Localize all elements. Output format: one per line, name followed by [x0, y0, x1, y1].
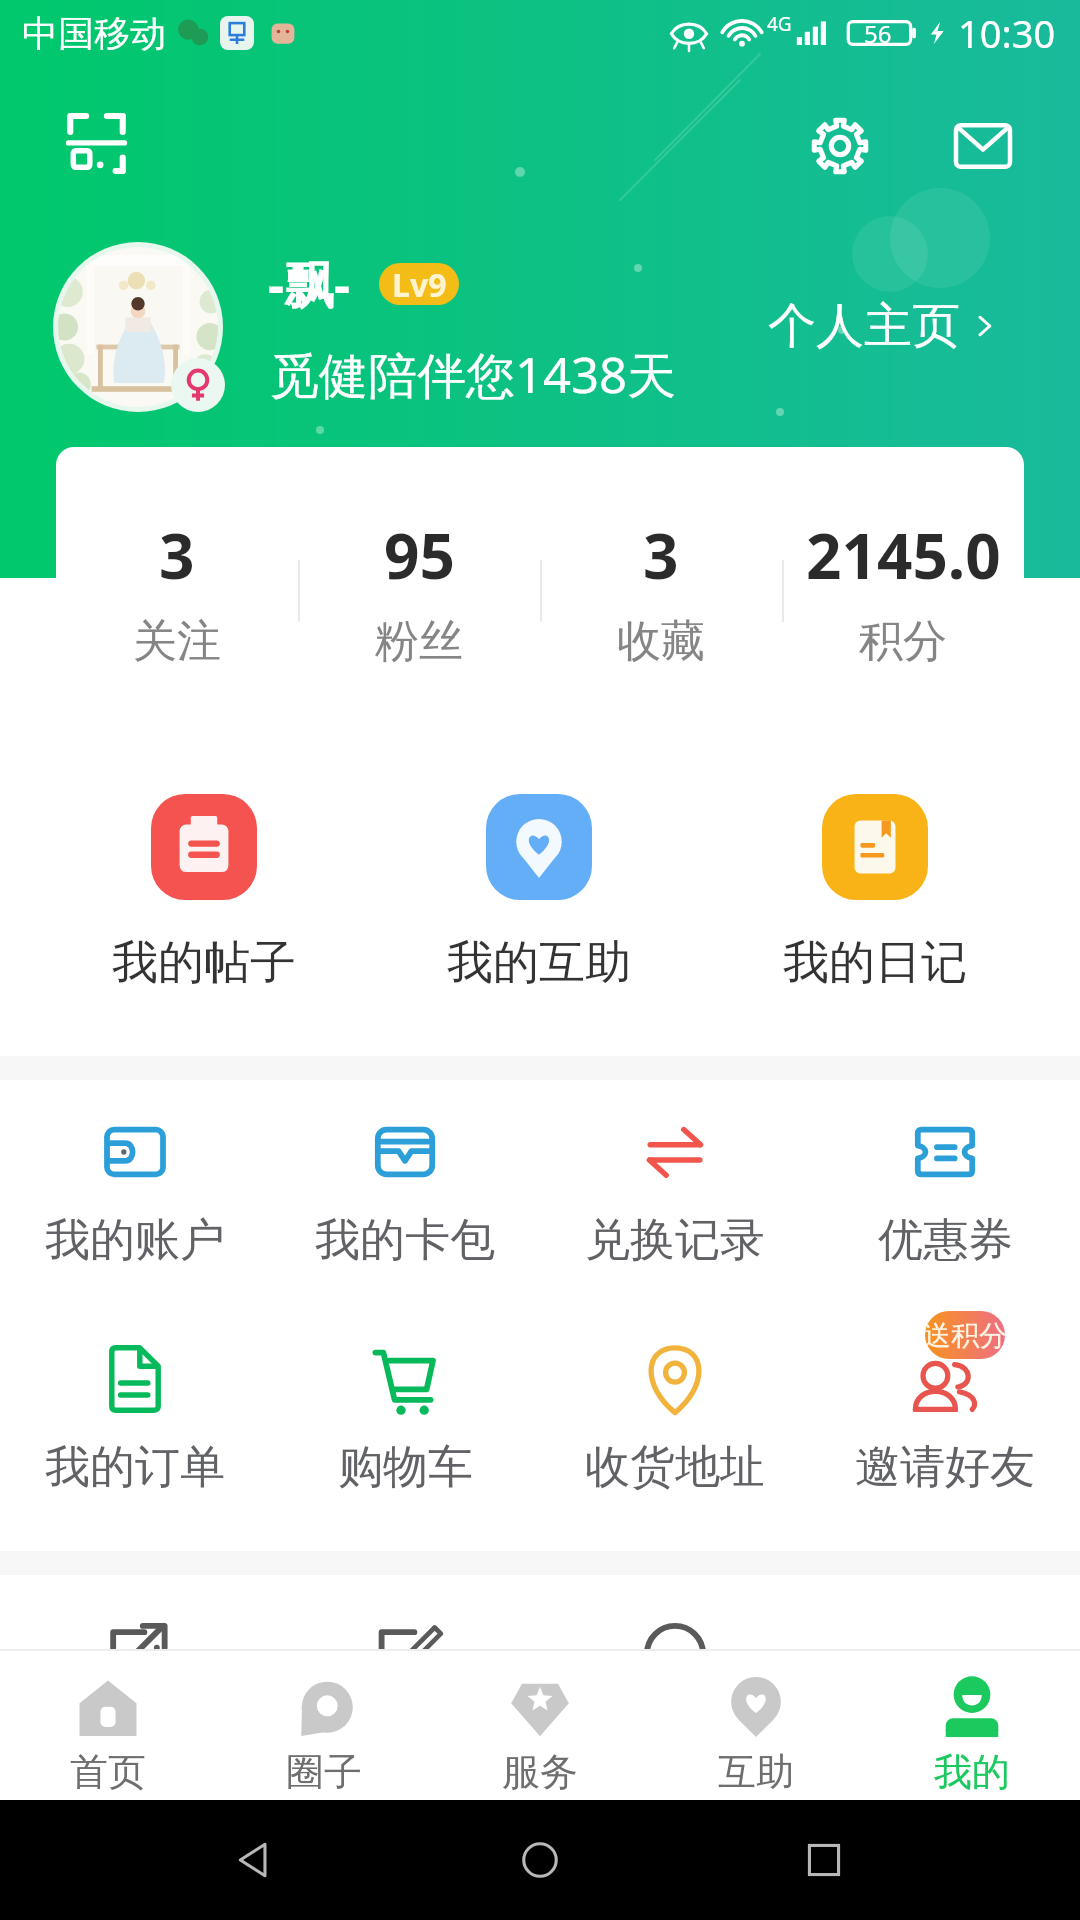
staticText: 关注 [133, 614, 221, 669]
button[interactable]: Settings [810, 116, 870, 176]
staticText: 个人主页 [768, 296, 960, 356]
button[interactable]: Scan QR code [66, 113, 127, 174]
staticText: 我的日记 [783, 934, 967, 992]
staticText: 我的 [934, 1748, 1010, 1796]
button[interactable] [810, 1615, 1080, 1693]
staticText: 我的互助 [447, 934, 631, 992]
button[interactable]: 我的日记 [707, 794, 1043, 992]
staticText: 送积分 [925, 1318, 1005, 1353]
button[interactable]: 2145.0 [782, 447, 1024, 727]
button[interactable] [270, 1615, 540, 1693]
staticText: 56 [864, 17, 892, 50]
button[interactable]: Home [512, 1832, 568, 1888]
button[interactable]: Messages [953, 116, 1013, 176]
button[interactable]: 个人主页 [768, 296, 1002, 356]
button[interactable]: 圈子 [216, 1651, 432, 1796]
button[interactable]: 3 [56, 447, 298, 727]
button[interactable] [540, 1615, 810, 1693]
button[interactable]: Back [228, 1832, 284, 1888]
staticText: Lv9 [392, 263, 447, 305]
staticText: 我的卡包 [315, 1212, 495, 1269]
button[interactable]: 3 [540, 447, 782, 727]
button[interactable]: 购物车 [270, 1339, 540, 1496]
button[interactable]: 首页 [0, 1651, 216, 1796]
staticText: 兑换记录 [585, 1212, 765, 1269]
staticText: 收藏 [617, 614, 705, 669]
staticText: 邀请好友 [855, 1439, 1035, 1496]
button[interactable]: 我的互助 [371, 794, 707, 992]
button[interactable]: 我的 [864, 1651, 1080, 1796]
staticText: 购物车 [338, 1439, 473, 1496]
button[interactable]: 优惠券 [810, 1112, 1080, 1269]
staticText: 3 [159, 513, 195, 597]
staticText: 2145.0 [806, 513, 1001, 597]
button[interactable]: 我的订单 [0, 1339, 270, 1496]
button[interactable]: 兑换记录 [540, 1112, 810, 1269]
button[interactable]: 我的帖子 [36, 794, 371, 992]
staticText: 3 [643, 513, 679, 597]
staticText: 10:30 [958, 7, 1056, 59]
staticText: 圈子 [286, 1748, 362, 1796]
staticText: 粉丝 [375, 614, 463, 669]
button[interactable]: Recent apps [796, 1832, 852, 1888]
staticText: 收货地址 [585, 1439, 765, 1496]
button[interactable]: 送积分 [810, 1339, 1080, 1496]
staticText: 我的订单 [45, 1439, 225, 1496]
staticText: 服务 [502, 1748, 578, 1796]
staticText: 互助 [718, 1748, 794, 1796]
staticText: 觅健陪伴您1438天 [270, 341, 677, 408]
button[interactable]: 我的账户 [0, 1112, 270, 1269]
staticText: 我的账户 [45, 1212, 225, 1269]
staticText: 95 [384, 513, 455, 597]
button[interactable]: 互助 [648, 1651, 864, 1796]
staticText: 我的帖子 [112, 934, 296, 992]
button[interactable]: 收货地址 [540, 1339, 810, 1496]
staticText: 4G [767, 11, 792, 37]
staticText: 积分 [859, 614, 947, 669]
button[interactable]: 我的卡包 [270, 1112, 540, 1269]
staticText: -飘- [268, 250, 350, 318]
staticText: 中国移动 [22, 11, 166, 56]
button[interactable]: Profile photo [53, 242, 223, 412]
button[interactable]: 服务 [432, 1651, 648, 1796]
button[interactable]: 95 [298, 447, 540, 727]
staticText: 首页 [70, 1748, 146, 1796]
staticText: 优惠券 [878, 1212, 1013, 1269]
button[interactable] [0, 1615, 270, 1693]
